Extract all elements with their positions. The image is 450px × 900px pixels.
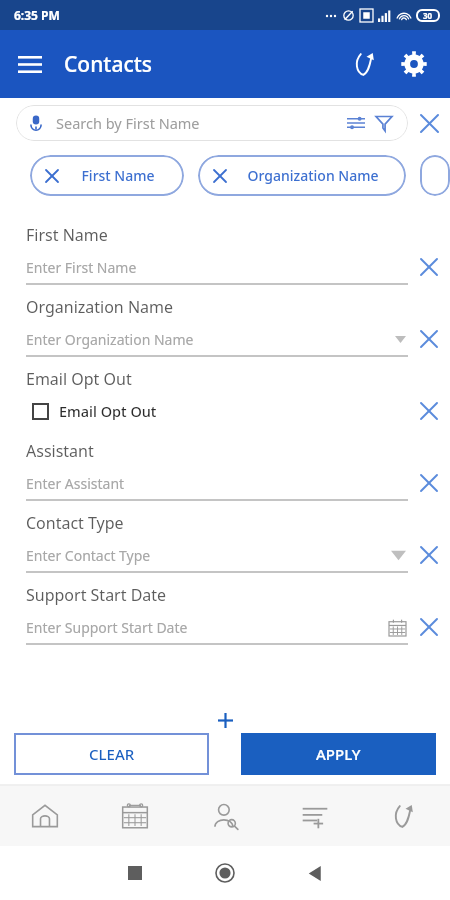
staticText: Organization Name <box>26 296 174 318</box>
button[interactable]: Calendar <box>90 786 180 846</box>
button[interactable]: APPLY <box>241 733 436 775</box>
button[interactable]: Share <box>342 40 390 88</box>
staticText: Enter Support Start Date <box>26 618 188 637</box>
staticText: Contact Type <box>26 512 124 534</box>
button[interactable]: Add list <box>270 786 360 846</box>
button[interactable]: Close search <box>412 106 446 140</box>
button[interactable]: Enter Support Start Date <box>26 609 408 645</box>
staticText: First Name <box>26 224 108 246</box>
button[interactable]: Clear Assistant <box>408 462 450 504</box>
button[interactable]: Back <box>270 846 360 900</box>
staticText: Organization Name <box>228 166 398 185</box>
button[interactable]: Clear Support Start Date <box>408 606 450 648</box>
button[interactable]: Enter Contact Type <box>26 537 408 573</box>
button[interactable]: Enter First Name <box>26 249 408 285</box>
button[interactable]: Clear First Name <box>408 246 450 288</box>
staticText: 30 <box>423 10 433 21</box>
staticText: Contacts <box>64 50 342 79</box>
button[interactable]: Home <box>180 846 270 900</box>
staticText: APPLY <box>316 744 361 764</box>
button[interactable]: Clear Email Opt Out <box>408 390 450 432</box>
staticText: Enter First Name <box>26 258 137 277</box>
staticText: CLEAR <box>89 744 135 764</box>
staticText: 6:35 PM <box>14 7 60 23</box>
button[interactable]: Clear Organization Name <box>408 318 450 360</box>
button[interactable]: Organization Name <box>198 155 406 196</box>
button[interactable]: First Name <box>30 155 184 196</box>
button[interactable]: Share <box>360 786 450 846</box>
button[interactable]: Find contact <box>180 786 270 846</box>
button[interactable]: Email Opt Out <box>32 394 408 428</box>
staticText: Enter Organization Name <box>26 330 194 349</box>
button[interactable] <box>420 155 450 196</box>
staticText: Support Start Date <box>26 584 167 606</box>
staticText: Enter Assistant <box>26 474 125 493</box>
button[interactable]: Search by First Name <box>16 105 408 141</box>
button[interactable]: Settings <box>390 40 438 88</box>
button[interactable]: Recents <box>90 846 180 900</box>
button[interactable]: Menu <box>8 42 52 86</box>
button[interactable]: Filter <box>370 109 398 137</box>
staticText: Email Opt Out <box>26 368 132 390</box>
staticText: First Name <box>60 166 176 185</box>
staticText: Enter Contact Type <box>26 546 151 565</box>
button[interactable]: Home <box>0 786 90 846</box>
button[interactable]: Enter Assistant <box>26 465 408 501</box>
staticText: Search by First Name <box>56 113 342 133</box>
button[interactable]: CLEAR <box>14 733 209 775</box>
button[interactable]: Add filter <box>212 707 238 733</box>
button[interactable]: Clear Contact Type <box>408 534 450 576</box>
staticText: Assistant <box>26 440 94 462</box>
staticText: Email Opt Out <box>59 401 157 421</box>
button[interactable]: Sort <box>342 109 370 137</box>
button[interactable]: Enter Organization Name <box>26 321 408 357</box>
